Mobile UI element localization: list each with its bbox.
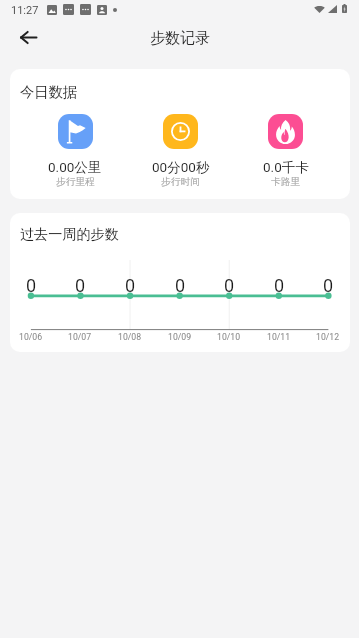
staticText: 0 — [26, 275, 37, 296]
button[interactable]: 00分00秒 — [128, 114, 233, 188]
staticText: 10/11 — [267, 332, 291, 342]
staticText: 0 — [323, 275, 334, 296]
staticText: 0.0千卡 — [263, 159, 309, 176]
staticText: 10/08 — [118, 332, 142, 342]
staticText: 步数记录 — [150, 29, 210, 48]
staticText: 10/12 — [316, 332, 340, 342]
staticText: 步行时间 — [161, 176, 200, 188]
staticText: 11:27 — [11, 4, 39, 17]
staticText: 00分00秒 — [152, 159, 210, 176]
staticText: 0 — [224, 275, 235, 296]
staticText: 10/07 — [68, 332, 92, 342]
staticText: 10/06 — [19, 332, 43, 342]
staticText: 0 — [175, 275, 186, 296]
staticText: 0 — [125, 275, 136, 296]
button[interactable]: 0.00公里 — [22, 114, 128, 188]
staticText: 今日数据 — [20, 83, 78, 101]
button[interactable]: Back — [10, 19, 46, 55]
staticText: 0 — [75, 275, 86, 296]
staticText: 0 — [274, 275, 285, 296]
staticText: 10/10 — [217, 332, 241, 342]
staticText: 10/09 — [168, 332, 192, 342]
button[interactable]: 0.0千卡 — [233, 114, 338, 188]
staticText: 0.00公里 — [48, 159, 102, 176]
staticText: 过去一周的步数 — [20, 225, 119, 243]
staticText: 步行里程 — [56, 176, 95, 188]
staticText: 卡路里 — [271, 176, 301, 188]
